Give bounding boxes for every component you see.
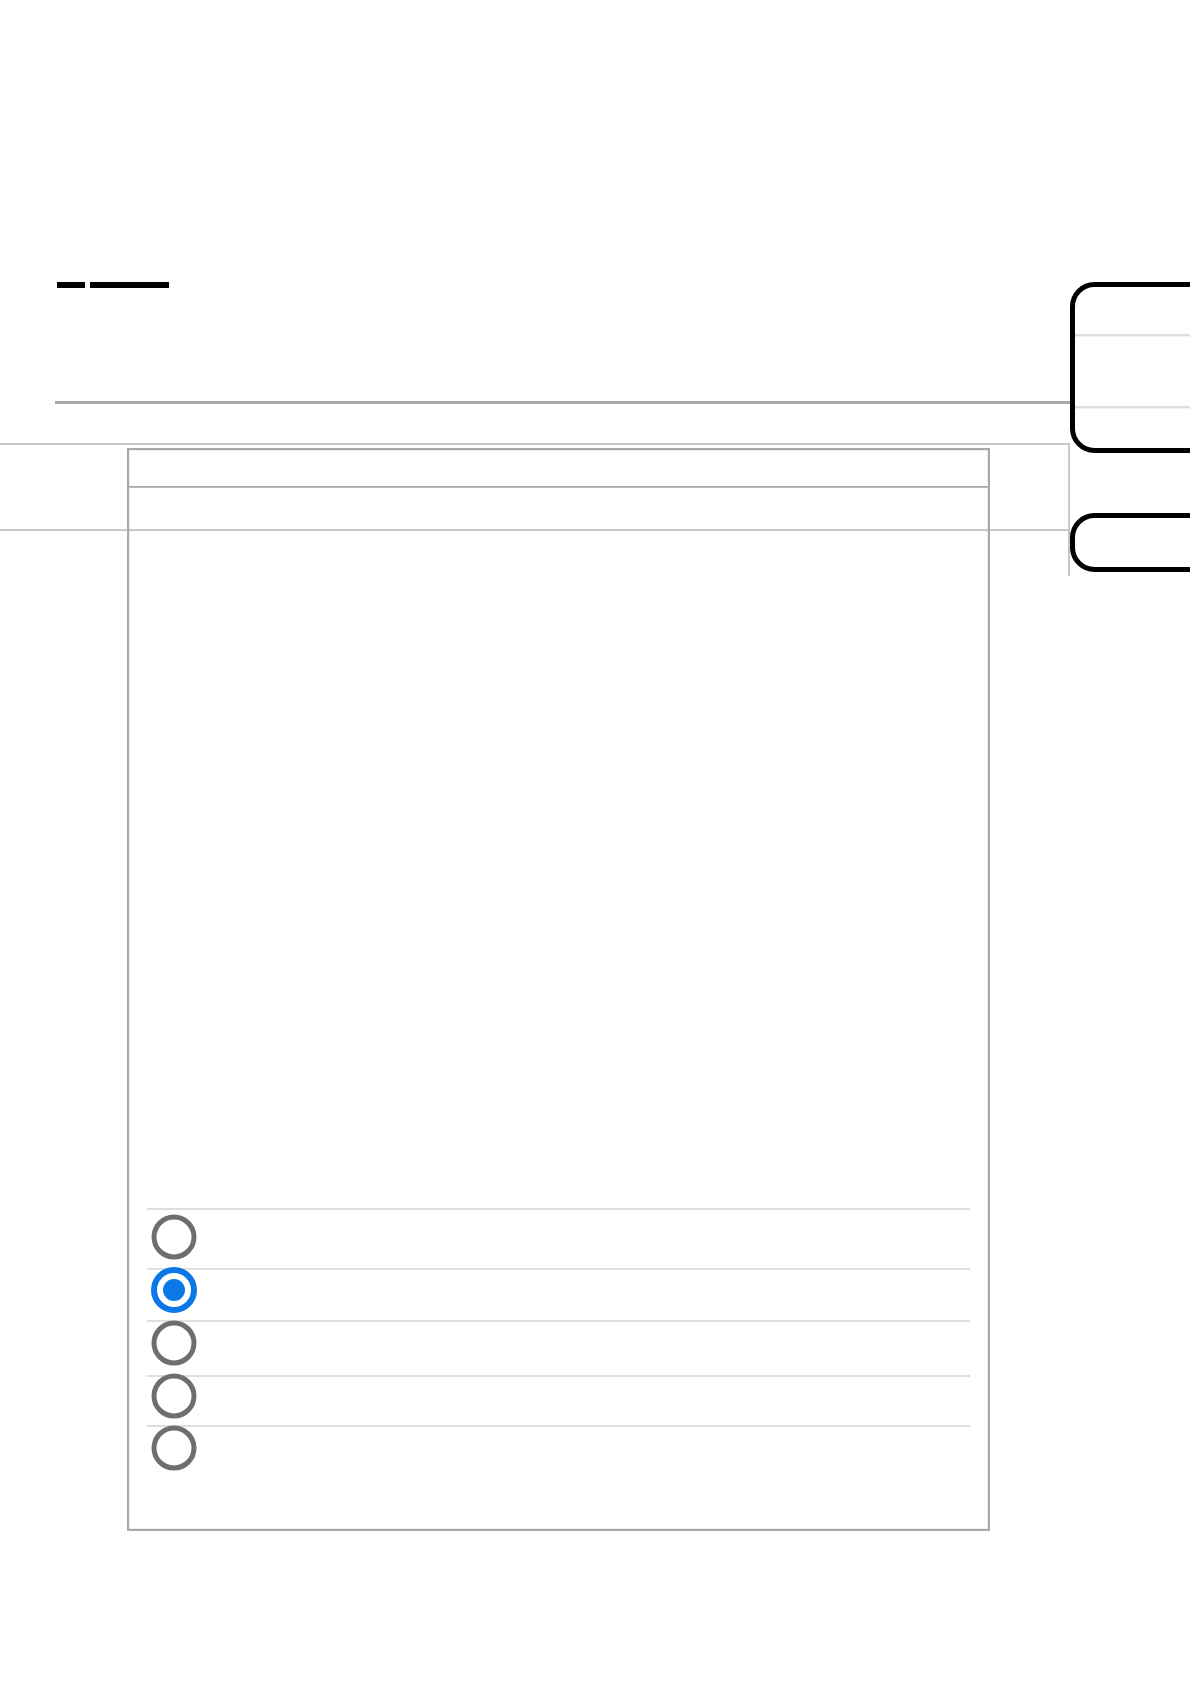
button[interactable]: Option 2 (147, 1264, 970, 1316)
button[interactable]: Option 4 (147, 1370, 970, 1422)
button[interactable]: Option 5 (147, 1422, 970, 1474)
button[interactable]: Option 1 (147, 1211, 970, 1263)
button[interactable]: Title (57, 282, 169, 288)
button[interactable]: Option 3 (147, 1317, 970, 1369)
button[interactable]: Side panel (1070, 513, 1190, 572)
button[interactable]: Side panel (1070, 282, 1190, 453)
